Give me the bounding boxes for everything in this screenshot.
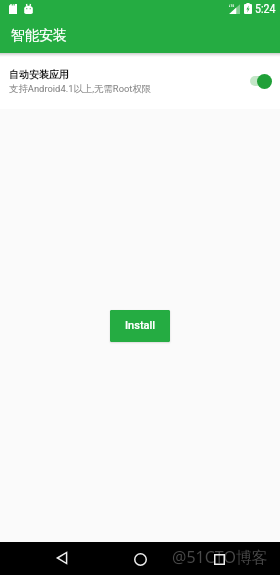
staticText: 5:24 — [255, 1, 276, 16]
staticText: 自动安装应用 — [9, 68, 69, 81]
staticText: 智能安装 — [11, 27, 67, 45]
button[interactable]: Back — [41, 543, 81, 575]
staticText: 支持Android4.1以上,无需Root权限 — [9, 83, 152, 95]
button[interactable]: Install — [110, 310, 170, 342]
staticText: Install — [125, 319, 156, 332]
button[interactable]: 自动安装应用 — [0, 53, 280, 109]
button[interactable]: Toggle auto install — [246, 72, 274, 90]
button[interactable]: Home — [120, 543, 160, 575]
button[interactable]: Recents — [199, 543, 239, 575]
staticText: @51CTO博客 — [172, 546, 268, 568]
